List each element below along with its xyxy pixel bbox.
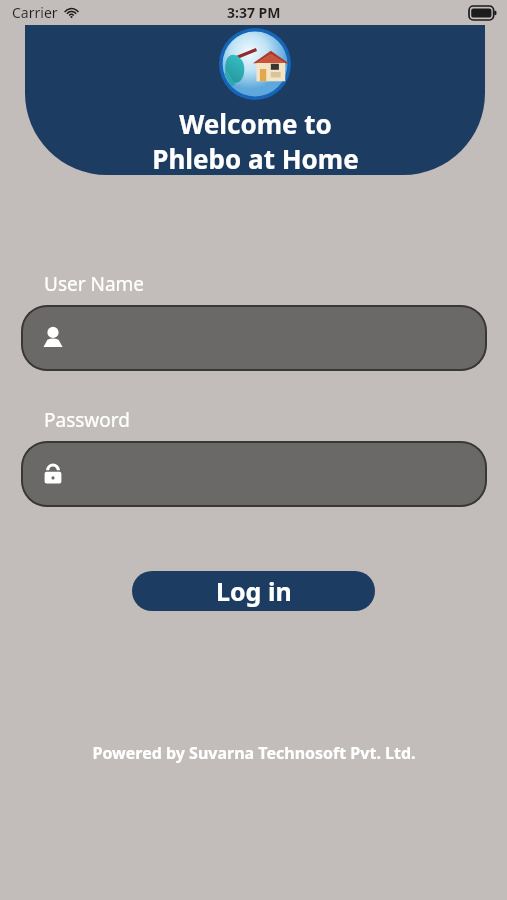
staticText: Powered by Suvarna Technosoft Pvt. Ltd.	[92, 742, 416, 764]
button[interactable]: Log in	[132, 571, 375, 611]
staticText: Log in	[216, 574, 292, 608]
staticText: Password	[44, 407, 130, 433]
button[interactable]: Password field	[21, 441, 487, 507]
staticText: User Name	[44, 271, 145, 297]
staticText: Carrier	[12, 3, 58, 22]
staticText: Phlebo at Home	[152, 141, 359, 175]
staticText: Welcome to	[179, 106, 332, 141]
button[interactable]: User Name field	[21, 305, 487, 371]
staticText: 3:37 PM	[227, 3, 281, 22]
